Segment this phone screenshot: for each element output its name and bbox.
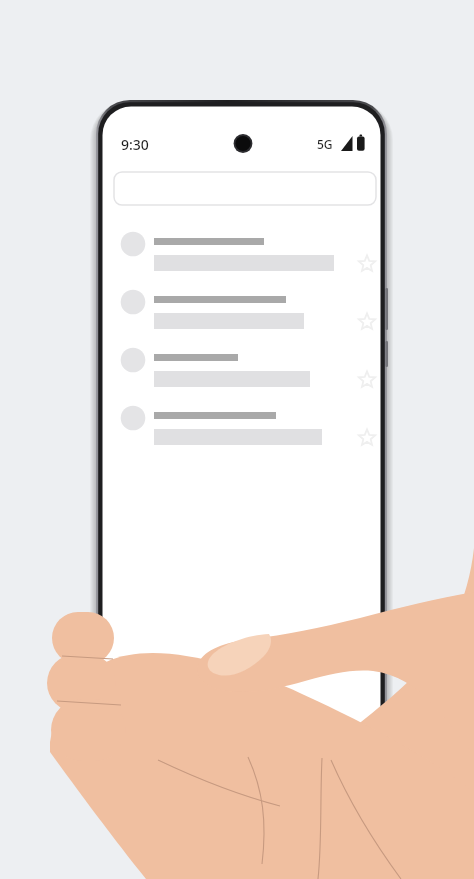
button[interactable] [110, 232, 382, 284]
button[interactable] [110, 406, 382, 458]
button[interactable]: Favorite [353, 423, 382, 453]
button[interactable]: Favorite [353, 249, 382, 279]
button[interactable] [110, 348, 382, 400]
button[interactable]: Favorite [353, 365, 382, 395]
button[interactable]: Favorite [353, 307, 382, 337]
button[interactable] [110, 290, 382, 342]
button[interactable]: Search [114, 172, 376, 205]
